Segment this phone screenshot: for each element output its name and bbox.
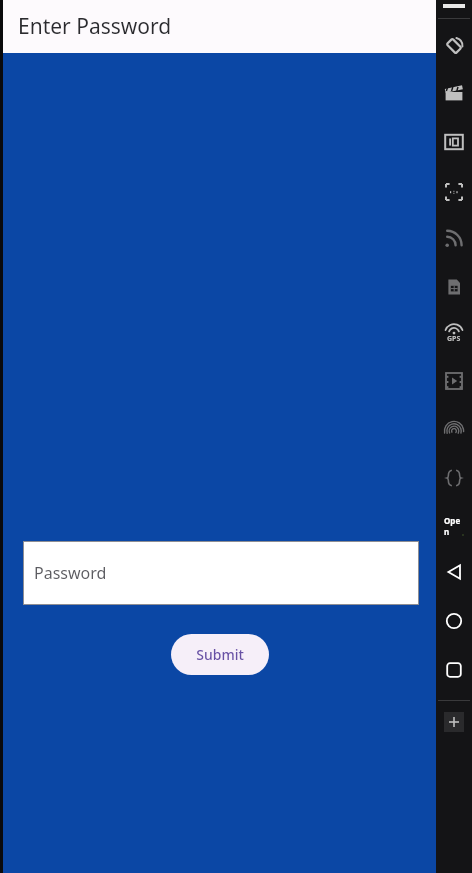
button[interactable]: Home <box>441 608 467 634</box>
button[interactable] <box>441 465 467 491</box>
button[interactable] <box>441 129 467 155</box>
staticText: Password <box>34 562 107 584</box>
staticText: Submit <box>196 645 244 664</box>
button[interactable]: GPS <box>441 320 467 346</box>
button[interactable] <box>441 225 467 251</box>
button[interactable]: Password <box>23 541 419 605</box>
button[interactable] <box>441 417 467 443</box>
staticText: Open <box>444 515 464 535</box>
button[interactable]: Submit <box>171 634 269 675</box>
button[interactable] <box>441 80 467 106</box>
button[interactable]: Open <box>441 512 467 538</box>
button[interactable]: Recents <box>441 657 467 683</box>
button[interactable] <box>441 179 467 205</box>
button[interactable]: Add <box>444 712 464 732</box>
button[interactable] <box>441 368 467 394</box>
staticText: GPS <box>447 334 461 344</box>
button[interactable]: Back <box>441 559 467 585</box>
button[interactable] <box>441 33 467 59</box>
staticText: Enter Password <box>18 12 172 41</box>
button[interactable] <box>441 274 467 300</box>
